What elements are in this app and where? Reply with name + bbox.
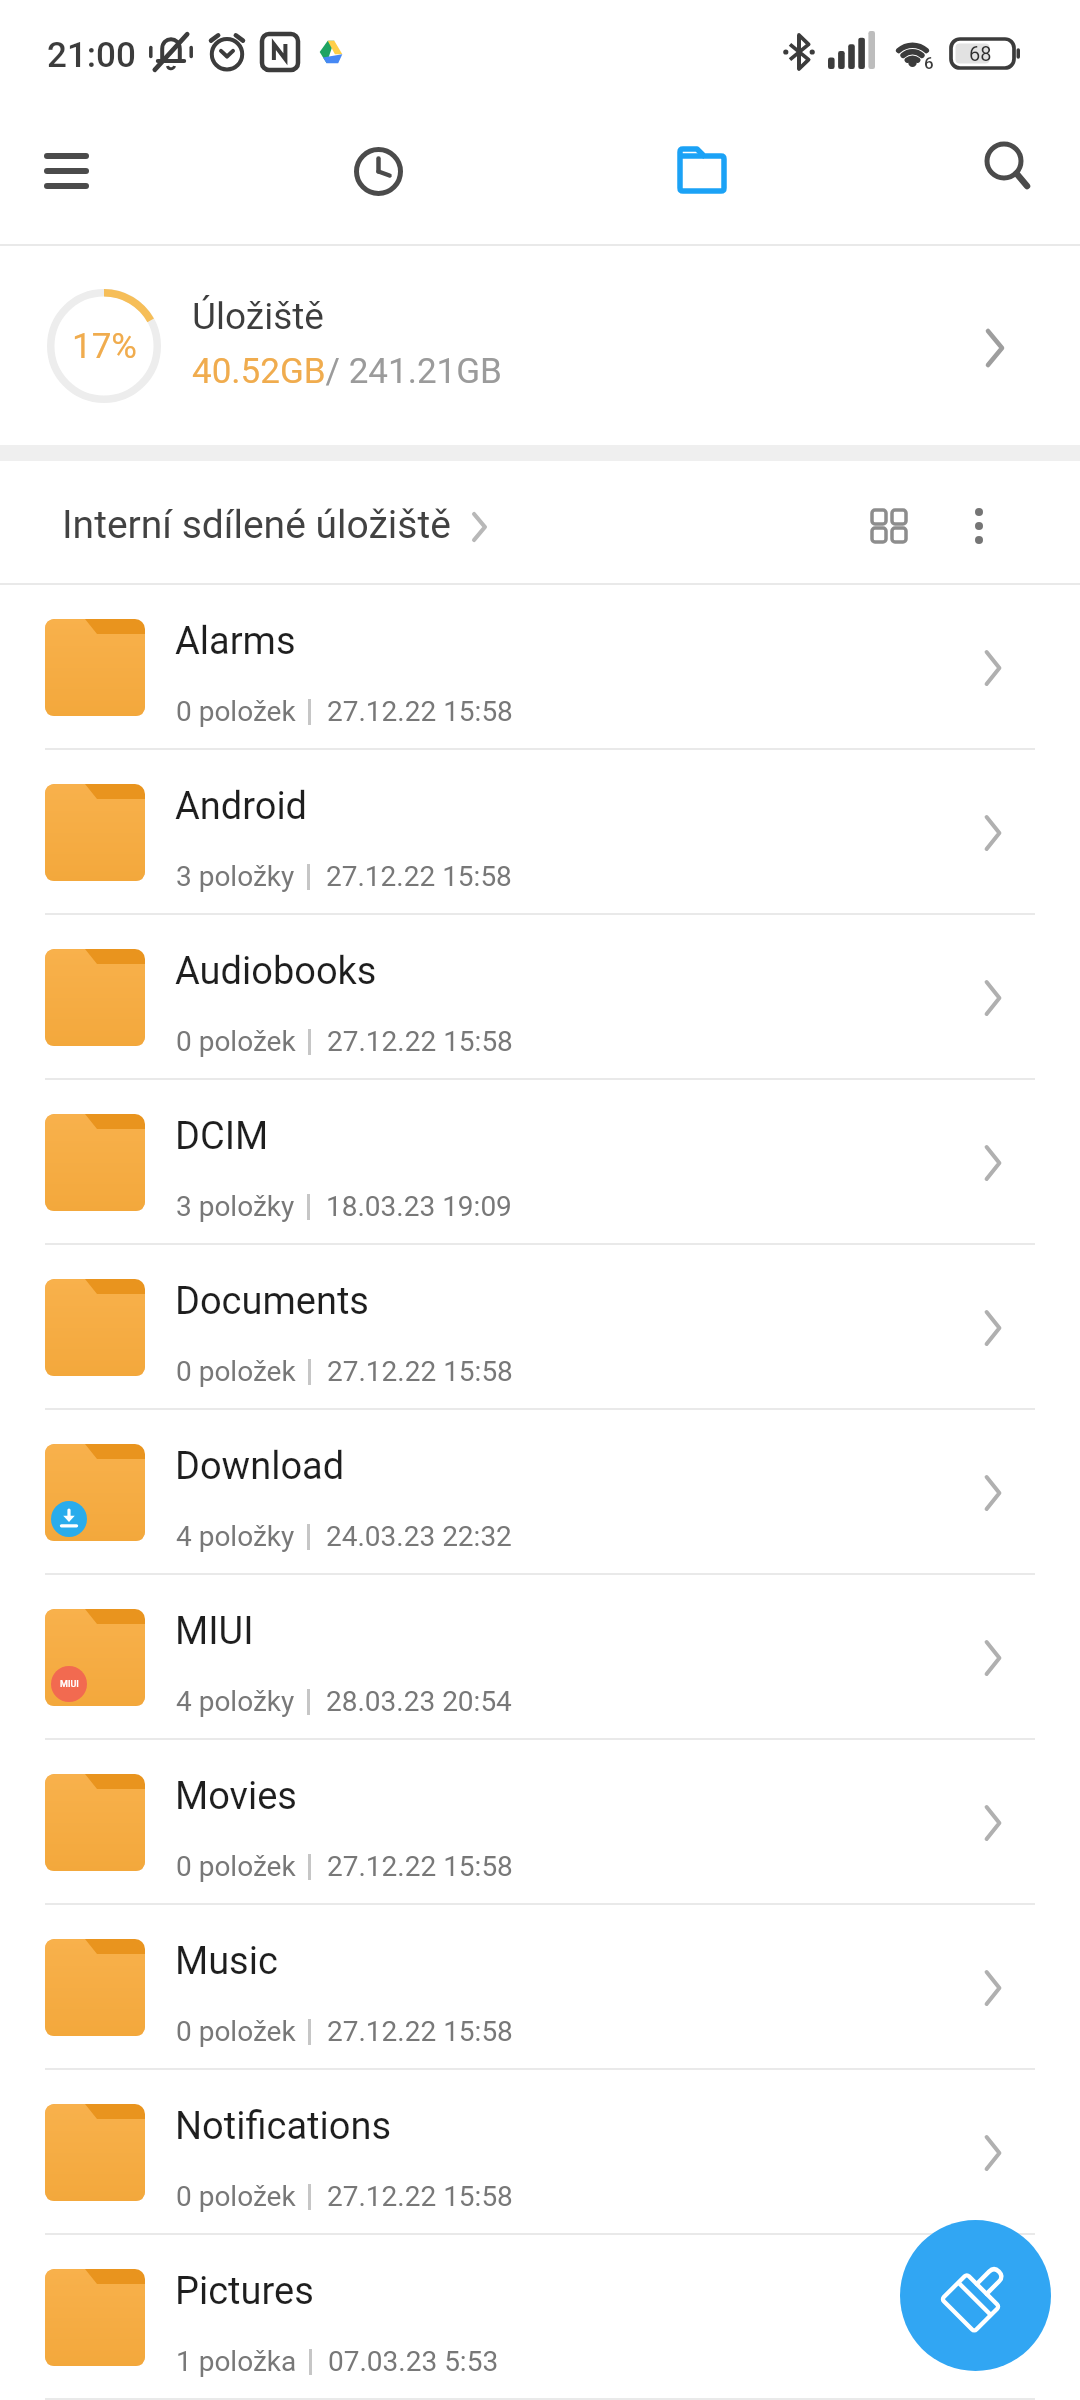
staticText: Audiobooks (175, 949, 377, 994)
staticText: 6 (924, 53, 934, 73)
staticText: 27.12.22 15:58 (327, 1025, 513, 1058)
button[interactable]: Download (0, 1410, 1080, 1575)
button[interactable]: 17% (0, 246, 1080, 445)
button[interactable]: Music (0, 1905, 1080, 2070)
staticText: 4 položky (176, 1520, 295, 1553)
staticText: Pictures (175, 2269, 314, 2314)
staticText: DCIM (175, 1114, 269, 1159)
staticText: 18.03.23 19:09 (326, 1190, 512, 1223)
staticText: 24.03.23 22:32 (326, 1520, 512, 1553)
staticText: Notifications (175, 2104, 392, 2149)
staticText: 0 položek (176, 1850, 296, 1883)
staticText: MIUI (60, 1679, 79, 1690)
staticText: 3 položky (176, 860, 295, 893)
staticText: 17% (72, 326, 137, 367)
button[interactable]: Notifications (0, 2070, 1080, 2235)
button[interactable] (950, 494, 1008, 558)
staticText: 27.12.22 15:58 (327, 695, 513, 728)
staticText: Download (175, 1444, 345, 1489)
button[interactable]: Pictures (0, 2235, 1080, 2400)
staticText: 27.12.22 15:58 (326, 860, 512, 893)
staticText: 0 položek (176, 695, 296, 728)
button[interactable] (346, 139, 410, 203)
staticText: 1 položka (176, 2345, 297, 2378)
staticText: 07.03.23 5:53 (328, 2345, 499, 2378)
button[interactable] (670, 138, 734, 202)
button[interactable]: Movies (0, 1740, 1080, 1905)
staticText: 0 položek (176, 1025, 296, 1058)
staticText: 40.52GB/ 241.21GB (192, 351, 502, 392)
button[interactable] (900, 2220, 1051, 2371)
staticText: MIUI (175, 1609, 254, 1654)
staticText: Music (175, 1939, 278, 1984)
staticText: 0 položek (176, 2180, 296, 2213)
staticText: 0 položek (176, 1355, 296, 1388)
staticText: Interní sdílené úložiště (62, 502, 451, 548)
button[interactable] (974, 136, 1038, 200)
staticText: Android (175, 784, 308, 829)
staticText: 0 položek (176, 2015, 296, 2048)
button[interactable]: DCIM (0, 1080, 1080, 1245)
staticText: Úložiště (192, 295, 324, 338)
button[interactable] (857, 494, 921, 558)
staticText: 27.12.22 15:58 (327, 2180, 513, 2213)
button[interactable]: Audiobooks (0, 915, 1080, 1080)
staticText: Alarms (175, 619, 296, 664)
button[interactable] (28, 140, 104, 202)
staticText: Documents (175, 1279, 369, 1324)
staticText: 27.12.22 15:58 (327, 2015, 513, 2048)
staticText: 28.03.23 20:54 (326, 1685, 512, 1718)
button[interactable]: MIUI (0, 1575, 1080, 1740)
button[interactable]: Android (0, 750, 1080, 915)
staticText: 27.12.22 15:58 (327, 1355, 513, 1388)
button[interactable]: Documents (0, 1245, 1080, 1410)
staticText: 27.12.22 15:58 (327, 1850, 513, 1883)
button[interactable]: Alarms (0, 585, 1080, 750)
staticText: 3 položky (176, 1190, 295, 1223)
staticText: 4 položky (176, 1685, 295, 1718)
staticText: Movies (175, 1774, 297, 1819)
staticText: 21:00 (47, 35, 136, 76)
staticText: 68 (969, 42, 992, 65)
